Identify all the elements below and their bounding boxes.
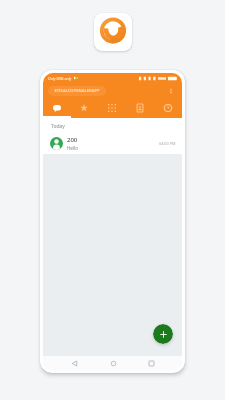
- staticText: 4:00: [170, 76, 177, 81]
- button[interactable]: Favorites: [70, 99, 98, 116]
- staticText: 04:00 PM: [159, 141, 176, 146]
- button[interactable]: New conversation: [153, 324, 173, 344]
- staticText: 200: [67, 136, 78, 144]
- staticText: Only SMS only: [48, 76, 72, 81]
- button[interactable]: 200: [43, 132, 182, 154]
- button[interactable]: More options: [165, 85, 177, 97]
- staticText: Today: [51, 123, 65, 130]
- button[interactable]: ETISALCOPENALERAPP: [48, 86, 106, 96]
- staticText: ETISALCOPENALERAPP: [54, 88, 100, 94]
- button[interactable]: Messages: [43, 99, 70, 116]
- staticText: Hello: [67, 145, 78, 151]
- button[interactable]: Recents: [144, 356, 158, 370]
- button[interactable]: Home: [106, 356, 120, 370]
- button[interactable]: Back: [67, 356, 81, 370]
- button[interactable]: Recents: [154, 99, 182, 116]
- button[interactable]: Dialpad: [98, 99, 126, 116]
- button[interactable]: Contacts: [126, 99, 154, 116]
